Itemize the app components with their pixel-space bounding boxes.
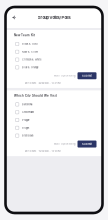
button[interactable]: Navy & Silver [5, 48, 102, 56]
staticText: Group Votes/Polls [37, 15, 70, 20]
button[interactable]: Crimson & White [5, 56, 102, 63]
staticText: Navy & Silver [22, 50, 38, 53]
staticText: Multi Option voting [54, 74, 75, 77]
staticText: Crimson & White [22, 58, 41, 61]
staticText: Black & Gold [22, 42, 37, 45]
button[interactable]: Submit [77, 72, 96, 79]
staticText: Vote closed : 15/03/2020 - 14:18 PM [24, 150, 60, 153]
staticText: Prague [22, 119, 29, 121]
button[interactable]: Bratislava [5, 132, 102, 139]
staticText: Bratislava [22, 134, 33, 137]
staticText: Barcelona [22, 103, 32, 106]
staticText: Submit [82, 74, 92, 77]
staticText: Which City Should We Visit [14, 94, 57, 97]
button[interactable]: Bruges [5, 124, 102, 132]
staticText: Submit [82, 142, 92, 146]
button[interactable]: Back [7, 11, 19, 23]
button[interactable]: Prague [5, 116, 102, 124]
button[interactable]: Submit [77, 140, 96, 147]
button[interactable]: Barcelona [5, 100, 102, 108]
staticText: New Team Kit [14, 33, 35, 37]
staticText: Blue & Orange [22, 66, 38, 69]
staticText: Amsterdam [22, 111, 34, 114]
button[interactable]: Amsterdam [5, 108, 102, 116]
staticText: Bruges [22, 126, 29, 129]
button[interactable]: Black & Gold [5, 40, 102, 48]
staticText: Multi Option voting [54, 143, 75, 145]
button[interactable]: Blue & Orange [5, 63, 102, 71]
staticText: Vote closed : 26/08/2020 - 12:27 PM [24, 82, 60, 84]
